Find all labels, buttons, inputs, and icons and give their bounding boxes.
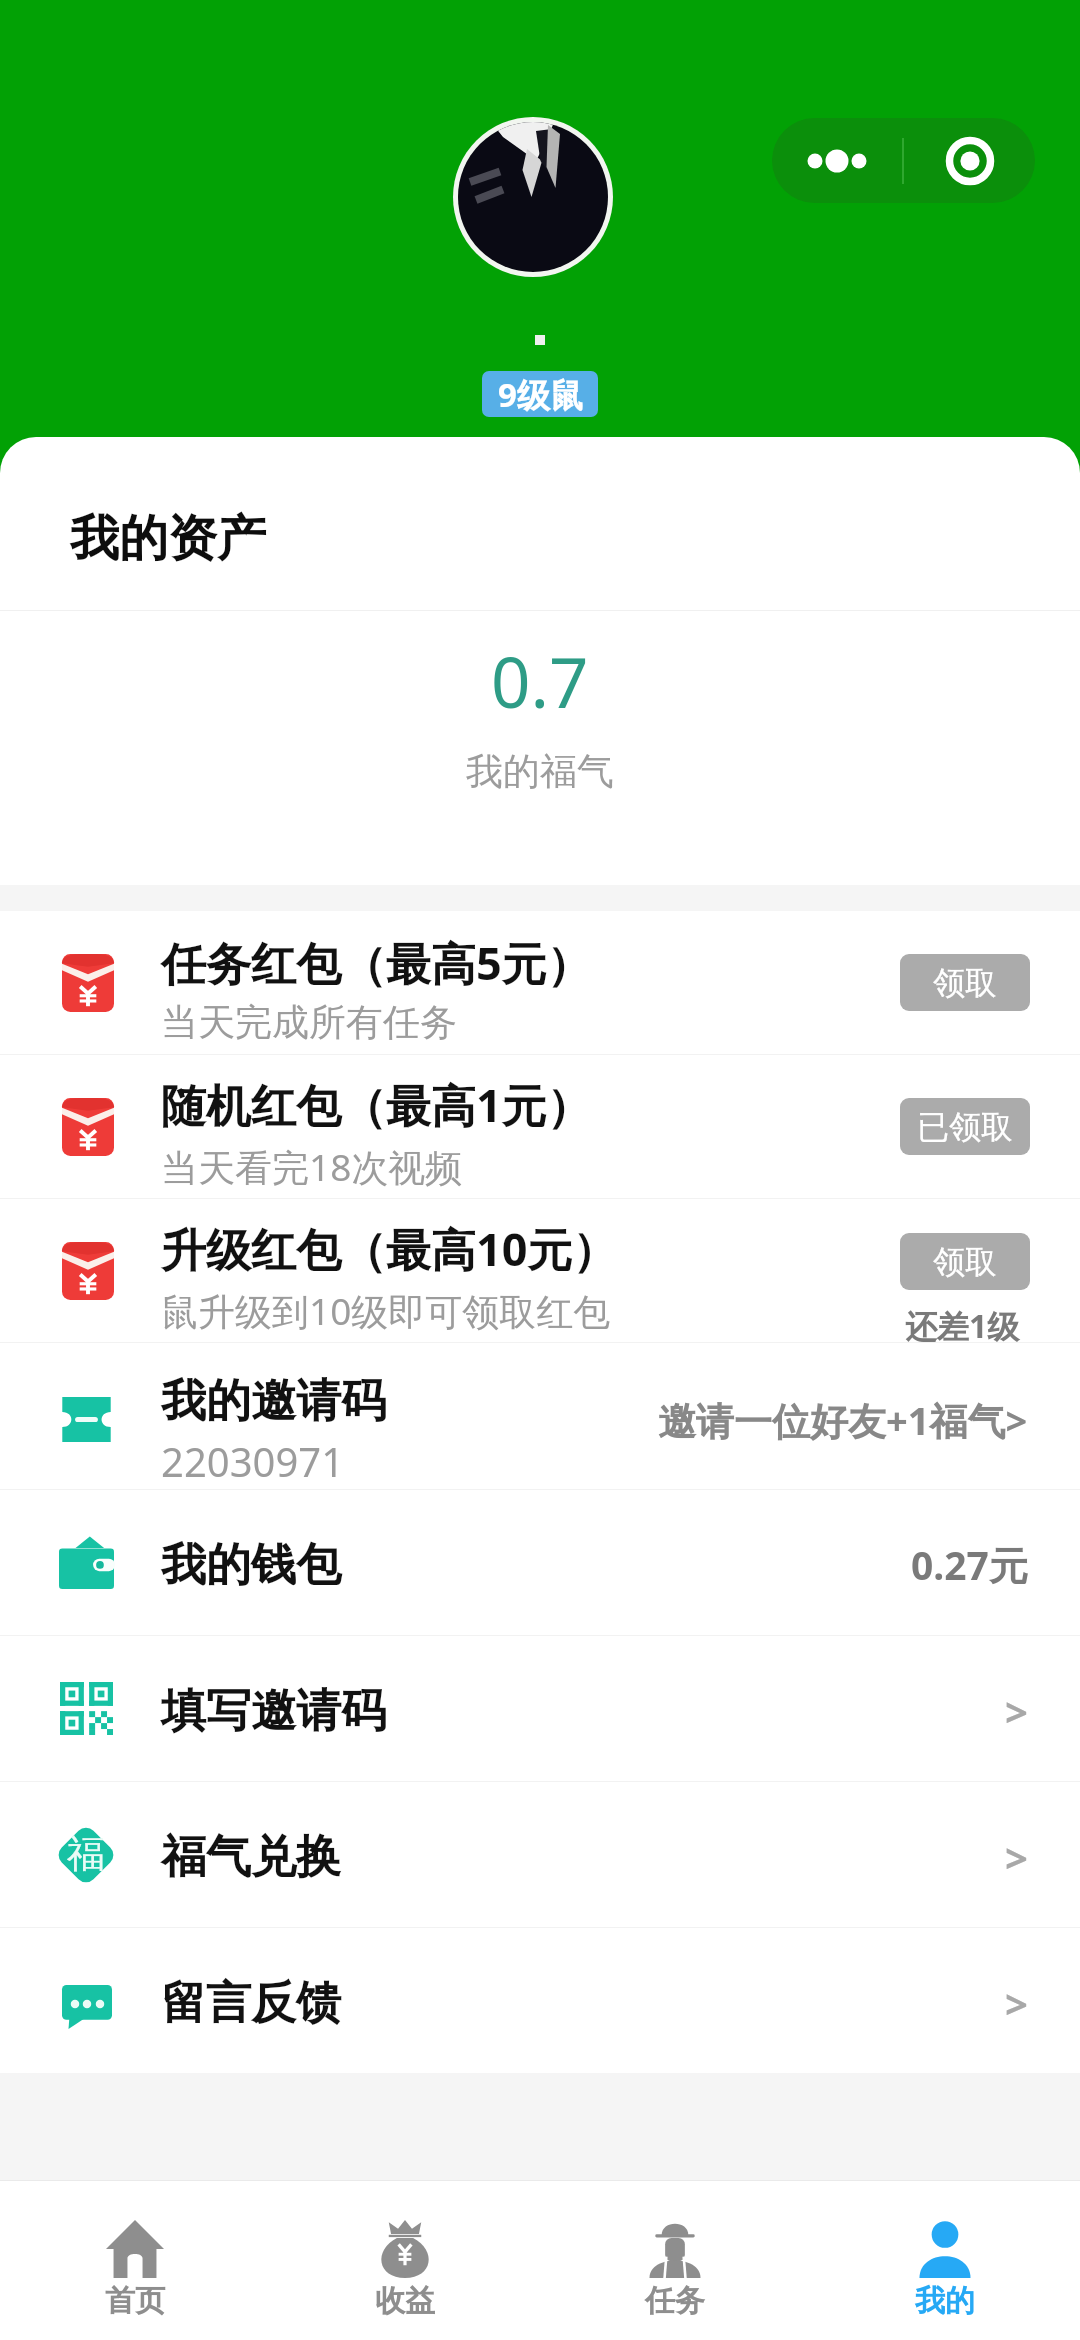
staticText: 9级鼠	[498, 372, 583, 417]
staticText: 留言反馈	[161, 1975, 341, 2032]
button[interactable]: 升级红包（最高10元）	[0, 1199, 1080, 1342]
staticText: 领取	[933, 963, 997, 1003]
staticText: 收益	[375, 2282, 435, 2320]
staticText: 升级红包（最高10元）	[161, 1218, 618, 1279]
staticText: 我的邀请码	[161, 1373, 386, 1430]
staticText: 领取	[933, 1242, 997, 1282]
staticText: >	[1005, 1684, 1028, 1738]
button[interactable]: 领取	[900, 1233, 1030, 1290]
button[interactable]: 收益	[270, 2181, 540, 2340]
staticText: 22030971	[161, 1434, 345, 1488]
staticText: 还差1级	[905, 1304, 1020, 1348]
staticText: 当天看完18次视频	[161, 1141, 463, 1192]
button[interactable]: 福	[0, 1782, 1080, 1927]
staticText: 我的	[915, 2282, 975, 2320]
staticText: 填写邀请码	[161, 1683, 386, 1740]
button[interactable]: 我的	[810, 2181, 1080, 2340]
button[interactable]: 随机红包（最高1元）	[0, 1055, 1080, 1198]
staticText: 0.7	[491, 634, 589, 728]
staticText: 首页	[105, 2282, 165, 2320]
staticText: 邀请一位好友+1福气>	[658, 1394, 1028, 1446]
staticText: 鼠升级到10级即可领取红包	[161, 1285, 611, 1336]
staticText: 已领取	[917, 1107, 1013, 1147]
staticText: >	[1005, 1830, 1028, 1884]
staticText: 任务	[645, 2282, 705, 2320]
button[interactable]: More options	[772, 118, 1035, 203]
other: Close mini program	[904, 118, 1035, 203]
button[interactable]: 留言反馈	[0, 1928, 1080, 2073]
staticText: 福	[67, 1830, 105, 1878]
staticText: 0.27元	[911, 1538, 1028, 1591]
staticText: 我的福气	[466, 748, 614, 795]
button[interactable]: 填写邀请码	[0, 1636, 1080, 1781]
staticText: 我的钱包	[161, 1537, 341, 1594]
staticText: 任务红包（最高5元）	[161, 932, 592, 993]
button[interactable]: 领取	[900, 954, 1030, 1011]
button[interactable]: 任务	[540, 2181, 810, 2340]
other: More options	[772, 118, 902, 203]
button[interactable]: 任务红包（最高5元）	[0, 911, 1080, 1054]
staticText: 当天完成所有任务	[161, 999, 457, 1046]
staticText: >	[1005, 1976, 1028, 2030]
button[interactable]: 我的邀请码	[0, 1343, 1080, 1489]
button[interactable]: 我的钱包	[0, 1490, 1080, 1635]
staticText: 随机红包（最高1元）	[161, 1074, 592, 1135]
staticText: 我的资产	[70, 508, 266, 570]
staticText: 福气兑换	[161, 1829, 341, 1886]
button[interactable]: 已领取	[900, 1098, 1030, 1155]
button[interactable]: 首页	[0, 2181, 270, 2340]
